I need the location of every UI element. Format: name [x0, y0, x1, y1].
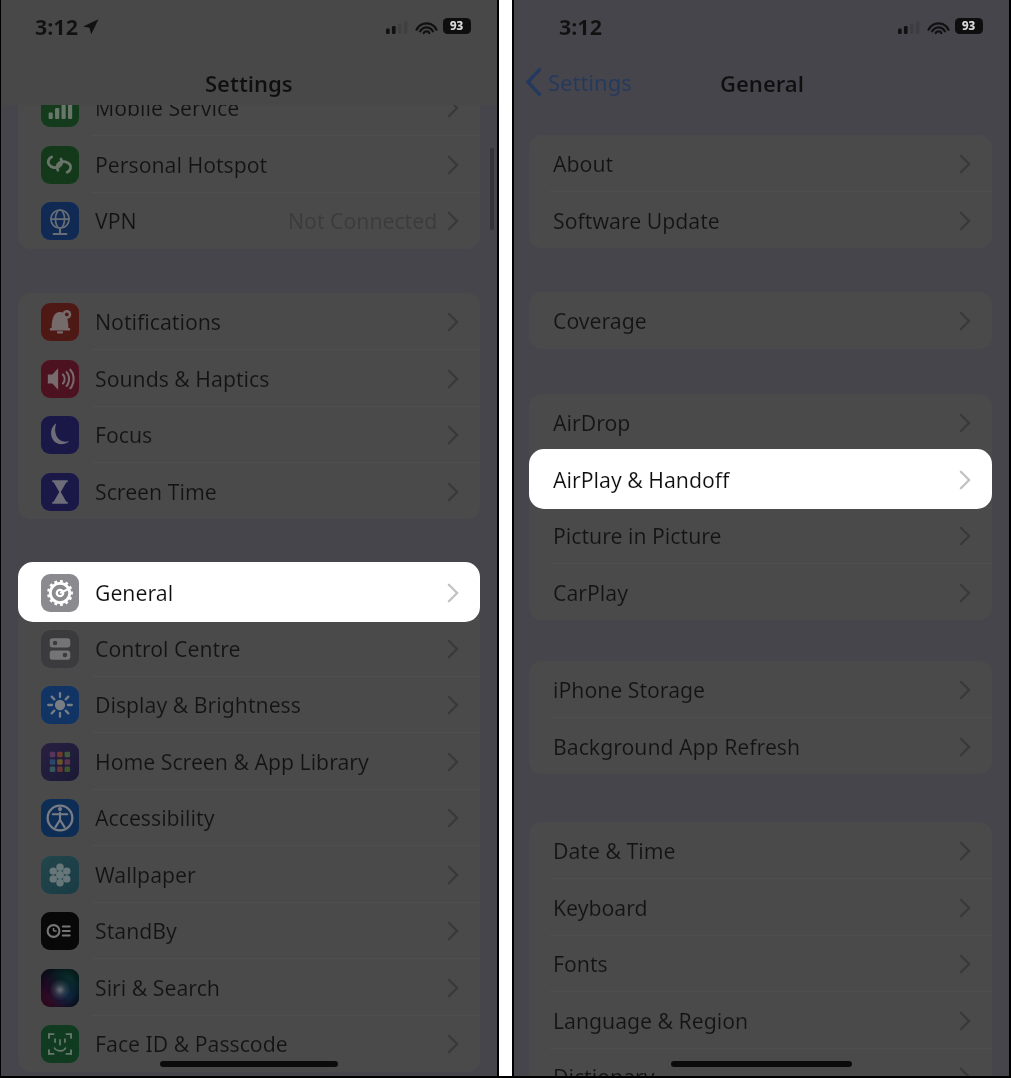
staticText: Personal Hotspot: [95, 150, 268, 179]
staticText: iPhone Storage: [553, 675, 706, 704]
staticText: General: [720, 68, 804, 98]
staticText: Notifications: [95, 307, 222, 336]
staticText: Background App Refresh: [553, 732, 801, 761]
button[interactable]: General: [18, 563, 480, 620]
button[interactable]: Picture in Picture: [529, 507, 992, 564]
button[interactable]: General: [18, 564, 480, 621]
staticText: Sounds & Haptics: [95, 364, 270, 393]
staticText: Siri & Search: [95, 973, 220, 1002]
staticText: 3:12: [35, 12, 78, 41]
staticText: Keyboard: [553, 893, 648, 922]
button[interactable]: Coverage: [529, 292, 992, 349]
staticText: 3:12: [559, 12, 602, 41]
button[interactable]: Keyboard: [529, 879, 992, 936]
button[interactable]: Accessibility: [18, 789, 480, 846]
button[interactable]: Background App Refresh: [529, 718, 992, 774]
staticText: Settings: [205, 68, 293, 98]
button[interactable]: AirDrop: [529, 394, 992, 451]
button[interactable]: Home Screen & App Library: [18, 733, 480, 790]
staticText: Not Connected: [288, 206, 438, 235]
staticText: Control Centre: [95, 634, 241, 663]
staticText: General: [95, 578, 174, 607]
staticText: AirPlay & Handoff: [553, 465, 730, 494]
button[interactable]: Software Update: [529, 192, 992, 248]
button[interactable]: Screen Time: [18, 463, 480, 519]
staticText: Wallpaper: [95, 860, 196, 889]
staticText: Settings: [548, 67, 632, 97]
staticText: Screen Time: [95, 477, 217, 506]
staticText: StandBy: [95, 916, 177, 945]
staticText: About: [553, 149, 614, 178]
button[interactable]: Language & Region: [529, 992, 992, 1049]
staticText: Fonts: [553, 949, 608, 978]
button[interactable]: StandBy: [18, 902, 480, 959]
button[interactable]: Dictionary: [529, 1048, 992, 1076]
button[interactable]: AirPlay & Handoff: [529, 451, 992, 508]
button[interactable]: Fonts: [529, 935, 992, 992]
button[interactable]: Face ID & Passcode: [18, 1015, 480, 1072]
staticText: 93: [962, 18, 976, 34]
staticText: Date & Time: [553, 836, 676, 865]
button[interactable]: Siri & Search: [18, 959, 480, 1016]
button[interactable]: Personal Hotspot: [18, 136, 480, 193]
staticText: AirPlay & Handoff: [553, 465, 730, 494]
button[interactable]: Date & Time: [529, 822, 992, 879]
button[interactable]: Notifications: [18, 293, 480, 350]
button[interactable]: Display & Brightness: [18, 676, 480, 733]
staticText: Coverage: [553, 306, 647, 335]
button[interactable]: Control Centre: [18, 620, 480, 677]
button[interactable]: About: [529, 135, 992, 192]
staticText: 93: [450, 18, 464, 34]
button[interactable]: Sounds & Haptics: [18, 350, 480, 407]
button[interactable]: Focus: [18, 406, 480, 463]
staticText: CarPlay: [553, 578, 629, 607]
button[interactable]: iPhone Storage: [529, 661, 992, 718]
staticText: General: [95, 577, 174, 606]
staticText: Home Screen & App Library: [95, 747, 369, 776]
staticText: AirDrop: [553, 408, 631, 437]
staticText: Mobile Service: [95, 93, 240, 122]
staticText: VPN: [95, 206, 137, 235]
button[interactable]: CarPlay: [529, 564, 992, 620]
staticText: Display & Brightness: [95, 690, 301, 719]
button[interactable]: Mobile Service: [18, 79, 480, 136]
staticText: Software Update: [553, 206, 720, 235]
button[interactable]: VPN: [18, 192, 480, 249]
button[interactable]: AirPlay & Handoff: [529, 451, 992, 508]
staticText: Dictionary: [553, 1062, 655, 1076]
button[interactable]: Back to Settings: [525, 67, 632, 97]
staticText: Accessibility: [95, 803, 215, 832]
staticText: Focus: [95, 420, 153, 449]
button[interactable]: Wallpaper: [18, 846, 480, 903]
staticText: Picture in Picture: [553, 521, 722, 550]
staticText: Face ID & Passcode: [95, 1029, 288, 1058]
staticText: Language & Region: [553, 1006, 749, 1035]
